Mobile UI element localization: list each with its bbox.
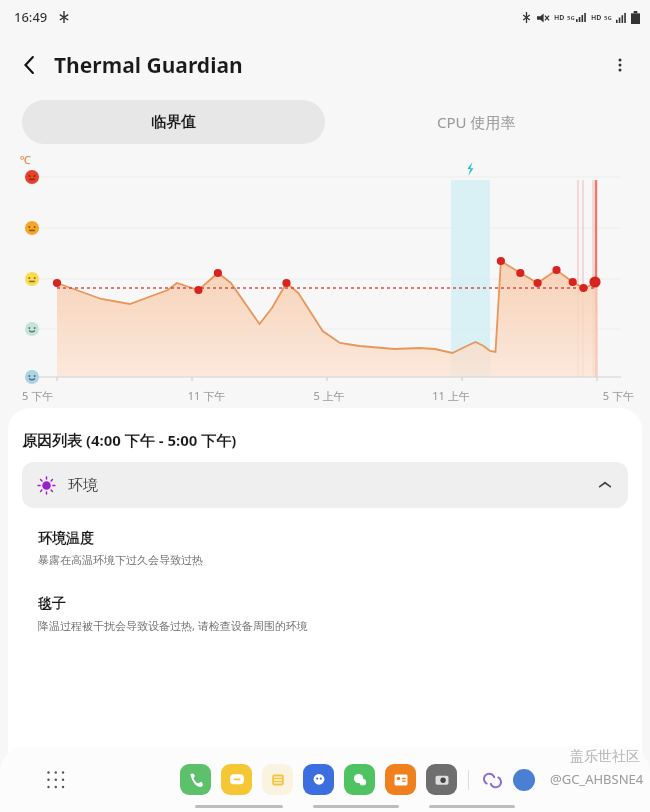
staticText: 5G [604, 14, 612, 22]
staticText: 5G [567, 14, 575, 22]
button[interactable]: Apps [38, 762, 72, 796]
staticText: 11 下午 [145, 388, 268, 403]
staticText: ℃ [20, 152, 31, 167]
button[interactable]: 临界值 [22, 100, 325, 144]
button[interactable]: WeChat [344, 764, 375, 795]
button[interactable]: Messages [221, 764, 252, 795]
button[interactable]: Contacts [385, 764, 416, 795]
staticText: HD [554, 13, 565, 23]
button[interactable]: More options [598, 43, 642, 87]
button[interactable]: Back [8, 43, 52, 87]
button[interactable]: QQ [303, 764, 334, 795]
button[interactable]: Browser [513, 769, 535, 791]
button[interactable]: 毯子 [38, 595, 612, 633]
staticText: @GC_AHBSNE4 [550, 770, 644, 788]
button[interactable]: Phone [180, 764, 211, 795]
button[interactable]: 环境温度 [38, 530, 612, 567]
staticText: 16:49 [14, 8, 48, 26]
staticText: CPU 使用率 [437, 112, 516, 132]
button[interactable]: Notes [262, 764, 293, 795]
staticText: 原因列表 (4:00 下午 - 5:00 下午) [22, 430, 237, 450]
button[interactable]: CPU 使用率 [325, 96, 628, 148]
button[interactable]: 环境 [22, 462, 628, 508]
staticText: 5 上午 [268, 388, 390, 403]
staticText: Thermal Guardian [54, 51, 243, 80]
staticText: 毯子 [38, 595, 66, 613]
staticText: 环境温度 [38, 530, 94, 548]
staticText: 5 下午 [22, 388, 145, 403]
staticText: 环境 [68, 476, 98, 495]
staticText: HD [591, 13, 602, 23]
staticText: 暴露在高温环境下过久会导致过热 [38, 553, 203, 567]
staticText: 盖乐世社区 [570, 748, 640, 766]
staticText: 5 下午 [512, 388, 634, 403]
staticText: 11 上午 [390, 388, 512, 403]
staticText: 降温过程被干扰会导致设备过热, 请检查设备周围的环境 [38, 618, 308, 633]
button[interactable]: Camera [426, 764, 457, 795]
staticText: 临界值 [151, 113, 196, 132]
button[interactable]: Link [479, 767, 505, 793]
